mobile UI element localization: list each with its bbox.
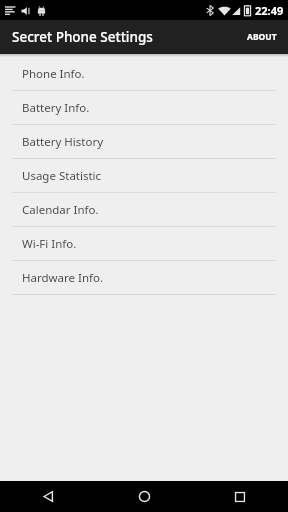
- staticText: Battery History: [22, 134, 104, 150]
- button[interactable]: Phone Info.: [0, 57, 288, 90]
- button[interactable]: Battery Info.: [0, 91, 288, 124]
- button[interactable]: Back: [0, 481, 96, 512]
- button[interactable]: Home: [96, 481, 192, 512]
- button[interactable]: Hardware Info.: [0, 261, 288, 294]
- staticText: Secret Phone Settings: [12, 28, 153, 46]
- staticText: Battery Info.: [22, 100, 90, 116]
- staticText: ABOUT: [247, 31, 277, 43]
- button[interactable]: Wi-Fi Info.: [0, 227, 288, 260]
- staticText: Phone Info.: [22, 66, 85, 82]
- staticText: 22:49: [255, 3, 284, 18]
- staticText: Usage Statistic: [22, 168, 102, 184]
- button[interactable]: Usage Statistic: [0, 159, 288, 192]
- staticText: Hardware Info.: [22, 270, 104, 286]
- button[interactable]: ABOUT: [236, 22, 288, 52]
- button[interactable]: Recent apps: [192, 481, 288, 512]
- staticText: Wi-Fi Info.: [22, 236, 77, 252]
- button[interactable]: Calendar Info.: [0, 193, 288, 226]
- staticText: Calendar Info.: [22, 202, 99, 218]
- button[interactable]: Battery History: [0, 125, 288, 158]
